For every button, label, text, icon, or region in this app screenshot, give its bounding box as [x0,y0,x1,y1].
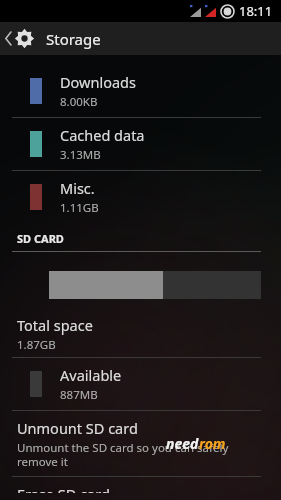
button[interactable]: Total space [0,309,281,357]
button[interactable]: Unmount SD card [0,411,281,476]
staticText: Total space [17,315,93,335]
staticText: Unmount SD card [17,418,138,438]
staticText: Unmount the SD card so you can safely re… [17,440,261,469]
staticText: 3.13MB [60,147,101,163]
button[interactable]: Cached data [0,118,281,170]
staticText: Erase SD card [17,484,110,493]
button[interactable]: Downloads [0,65,281,117]
staticText: Storage [46,29,101,49]
staticText: Downloads [60,72,136,92]
staticText: rom [199,434,226,453]
button[interactable]: Navigate up, Storage [0,22,281,55]
staticText: 18:11 [239,2,273,20]
staticText: 1.11GB [60,200,99,216]
staticText: 887MB [60,387,98,403]
button[interactable]: Erase SD card [0,477,281,500]
staticText: need [166,434,199,453]
staticText: SD CARD [17,231,64,246]
staticText: 8.00KB [60,94,98,110]
staticText: Available [60,365,122,385]
button[interactable]: Available [0,358,281,410]
staticText: Misc. [60,178,95,198]
staticText: Cached data [60,125,145,145]
staticText: 1.87GB [17,337,56,353]
button[interactable]: Misc. [0,171,281,223]
